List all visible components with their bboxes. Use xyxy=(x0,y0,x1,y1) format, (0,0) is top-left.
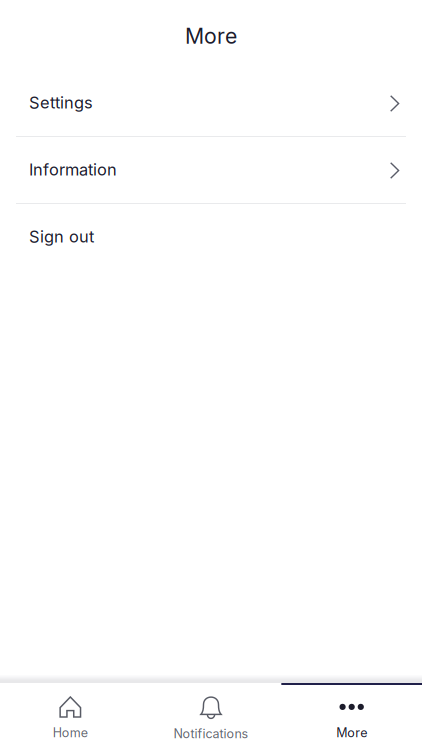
button[interactable]: Home xyxy=(0,683,141,750)
button[interactable]: Information xyxy=(0,137,422,203)
button[interactable]: Sign out xyxy=(0,204,422,270)
staticText: More xyxy=(185,23,237,49)
button[interactable]: Settings xyxy=(0,70,422,136)
staticText: Notifications xyxy=(173,726,248,741)
staticText: More xyxy=(336,725,367,740)
staticText: Home xyxy=(53,725,88,740)
button[interactable]: Notifications xyxy=(141,683,281,750)
staticText: Information xyxy=(29,160,117,179)
staticText: Settings xyxy=(29,93,93,112)
staticText: Sign out xyxy=(29,227,94,246)
button[interactable]: More xyxy=(281,683,422,750)
